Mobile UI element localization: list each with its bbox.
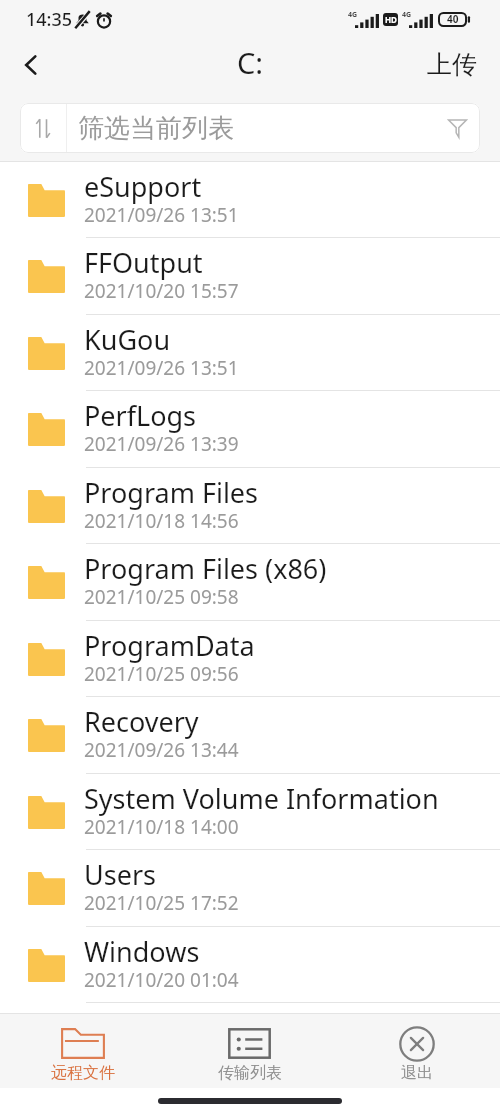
staticText: FFOutput [84,244,203,281]
staticText: 2021/09/26 13:44 [84,737,239,763]
staticText: 传输列表 [218,1063,282,1083]
button[interactable]: Remote files [0,1014,166,1088]
staticText: 2021/10/20 01:04 [84,967,239,993]
button[interactable]: ProgramData [0,621,500,697]
staticText: Program Files (x86) [84,550,327,587]
button[interactable]: Transfer list [166,1014,333,1088]
button[interactable]: PerfLogs [0,391,500,468]
button[interactable]: FFOutput [0,238,500,315]
staticText: Recovery [84,703,199,740]
staticText: 2021/10/25 17:52 [84,890,239,916]
staticText: 2021/10/18 14:00 [84,814,239,840]
staticText: 4G [348,10,358,20]
button[interactable]: Program Files [0,468,500,544]
staticText: 2021/10/18 14:56 [84,508,239,534]
button[interactable]: Sort [20,103,66,153]
staticText: Windows [84,933,200,970]
staticText: 退出 [401,1063,433,1083]
staticText: 40 [447,12,459,26]
staticText: PerfLogs [84,397,197,434]
button[interactable]: Exit [333,1014,500,1088]
staticText: C: [237,43,264,82]
staticText: 2021/10/25 09:56 [84,661,239,687]
staticText: KuGou [84,321,171,358]
staticText: 2021/10/20 15:57 [84,278,239,304]
staticText: 2021/10/25 09:58 [84,584,239,610]
button[interactable]: System Volume Information [0,774,500,850]
staticText: 远程文件 [51,1063,115,1083]
button[interactable]: Program Files (x86) [0,544,500,621]
staticText: 2021/09/26 13:51 [84,202,239,228]
button[interactable]: Recovery [0,697,500,774]
staticText: ProgramData [84,627,255,664]
staticText: 筛选当前列表 [78,112,234,145]
staticText: 14:35 [26,7,73,32]
button[interactable]: KuGou [0,315,500,391]
button[interactable]: Windows [0,927,500,1003]
staticText: System Volume Information [84,780,439,817]
button[interactable]: eSupport [0,162,500,238]
staticText: eSupport [84,168,202,205]
staticText: Program Files [84,474,259,511]
button[interactable]: Filter [434,103,480,153]
button[interactable]: Back [2,37,60,92]
button[interactable]: 上传 [427,36,477,91]
staticText: 2021/09/26 13:39 [84,431,239,457]
staticText: HD [385,14,397,25]
staticText: 4G [402,10,412,20]
staticText: Users [84,856,156,893]
button[interactable]: Users [0,850,500,927]
staticText: 上传 [427,49,477,80]
staticText: 2021/09/26 13:51 [84,355,239,381]
